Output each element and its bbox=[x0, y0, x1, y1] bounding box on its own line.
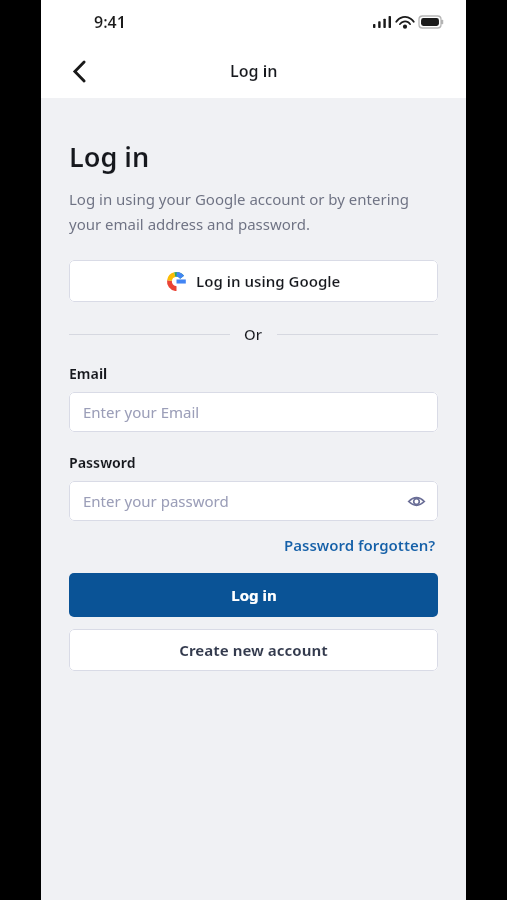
staticText: 9:41 bbox=[94, 11, 126, 33]
button[interactable]: Show password bbox=[400, 485, 432, 517]
button[interactable]: Password forgotten? bbox=[282, 533, 438, 557]
button[interactable]: Log in bbox=[69, 573, 438, 617]
staticText: Or bbox=[244, 324, 263, 344]
staticText: Log in bbox=[231, 585, 277, 605]
button[interactable]: Back bbox=[57, 49, 101, 93]
staticText: Log in bbox=[69, 138, 150, 175]
staticText: Log in using Google bbox=[196, 271, 341, 291]
staticText: Enter your Email bbox=[83, 402, 200, 422]
staticText: Enter your password bbox=[83, 491, 229, 511]
staticText: Create new account bbox=[179, 640, 328, 660]
button[interactable]: Create new account bbox=[69, 629, 438, 671]
staticText: Log in bbox=[230, 60, 278, 82]
staticText: Password bbox=[69, 453, 136, 472]
staticText: Email bbox=[69, 364, 108, 383]
button[interactable]: Log in using Google bbox=[69, 260, 438, 302]
button[interactable]: Enter your Email bbox=[69, 392, 438, 432]
staticText: Log in using your Google account or by e… bbox=[69, 189, 438, 234]
button[interactable]: Enter your password bbox=[69, 481, 438, 521]
